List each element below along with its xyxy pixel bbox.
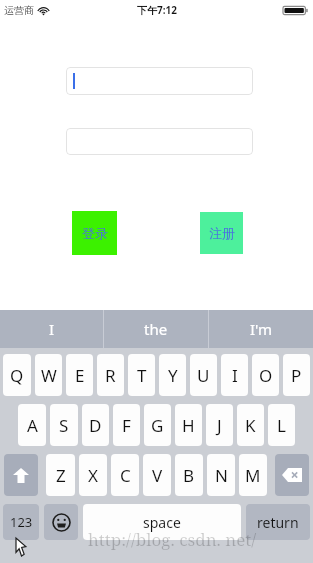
button[interactable]: P (283, 354, 310, 396)
staticText: 123 (10, 513, 33, 531)
staticText: J (217, 414, 222, 437)
staticText: T (137, 364, 147, 387)
button[interactable]: Z (46, 454, 75, 496)
staticText: the (144, 319, 168, 339)
button[interactable]: Emoji (44, 504, 78, 540)
staticText: 运营商 (4, 4, 34, 17)
staticText: O (259, 364, 273, 387)
button[interactable]: T (128, 354, 155, 396)
staticText: B (183, 464, 195, 487)
button[interactable]: C (111, 454, 139, 496)
staticText: V (152, 464, 163, 487)
button[interactable]: V (143, 454, 171, 496)
button[interactable]: Backspace (275, 454, 309, 496)
staticText: http://blog. csdn. net/ (88, 528, 257, 551)
staticText: K (245, 414, 256, 437)
button[interactable]: E (66, 354, 93, 396)
button[interactable]: O (252, 354, 279, 396)
staticText: M (245, 464, 261, 487)
button[interactable] (66, 128, 253, 155)
button[interactable]: U (190, 354, 217, 396)
button[interactable]: return (246, 504, 310, 540)
button[interactable]: Y (159, 354, 186, 396)
button[interactable]: L (268, 404, 295, 446)
staticText: 下午7:12 (137, 3, 177, 17)
staticText: 登录 (82, 225, 108, 241)
button[interactable]: G (144, 404, 171, 446)
staticText: P (291, 364, 302, 387)
button[interactable]: K (237, 404, 264, 446)
button[interactable]: B (175, 454, 203, 496)
staticText: F (122, 414, 131, 437)
staticText: I'm (250, 319, 273, 339)
button[interactable]: D (82, 404, 109, 446)
staticText: N (215, 464, 228, 487)
staticText: G (151, 414, 164, 437)
staticText: W (41, 364, 57, 387)
button[interactable]: J (206, 404, 233, 446)
button[interactable]: A (18, 404, 46, 446)
staticText: A (27, 414, 38, 437)
staticText: U (197, 364, 210, 387)
staticText: I (49, 319, 55, 339)
button[interactable]: S (50, 404, 78, 446)
staticText: C (120, 464, 131, 487)
button[interactable]: W (35, 354, 62, 396)
button[interactable]: R (97, 354, 124, 396)
button[interactable]: space (83, 504, 241, 540)
button[interactable]: X (79, 454, 107, 496)
staticText: H (182, 414, 195, 437)
button[interactable]: Q (3, 354, 31, 396)
staticText: R (105, 364, 116, 387)
button[interactable]: N (207, 454, 235, 496)
staticText: E (75, 364, 85, 387)
button[interactable]: I (221, 354, 248, 396)
staticText: L (277, 414, 286, 437)
button[interactable]: H (175, 404, 202, 446)
button[interactable]: the (104, 310, 208, 348)
button[interactable] (66, 67, 253, 95)
button[interactable]: F (113, 404, 140, 446)
staticText: return (257, 513, 299, 532)
button[interactable]: I'm (209, 310, 313, 348)
staticText: space (143, 513, 181, 532)
button[interactable]: Shift (4, 454, 38, 496)
button[interactable]: 登录 (72, 211, 117, 255)
button[interactable]: M (239, 454, 267, 496)
staticText: 注册 (209, 225, 235, 241)
staticText: S (59, 414, 69, 437)
staticText: Y (168, 364, 178, 387)
button[interactable]: I (0, 310, 103, 348)
staticText: Q (10, 364, 24, 387)
button[interactable]: 注册 (200, 212, 243, 254)
staticText: D (89, 414, 102, 437)
staticText: X (88, 464, 98, 487)
staticText: Z (56, 464, 66, 487)
button[interactable]: 123 (3, 504, 39, 540)
staticText: I (232, 364, 238, 387)
